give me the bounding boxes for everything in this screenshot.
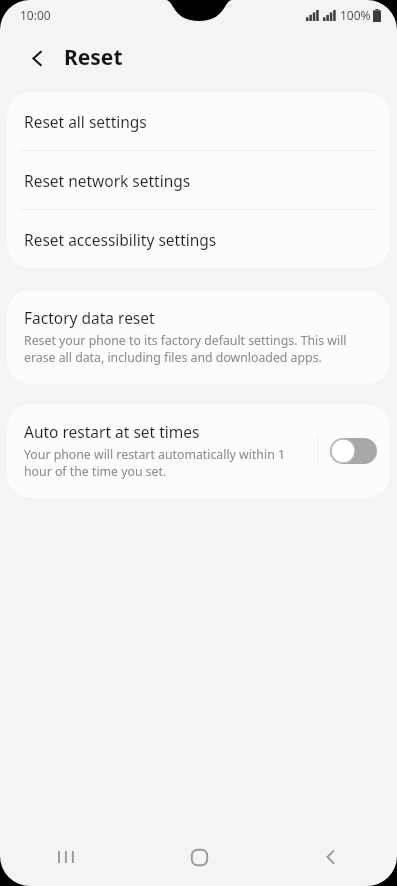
staticText: Reset — [64, 43, 123, 72]
button[interactable]: Reset network settings — [7, 151, 390, 209]
button[interactable]: Back — [265, 828, 397, 886]
button[interactable]: Auto restart at set times — [7, 404, 317, 498]
button[interactable]: Home — [133, 828, 265, 886]
staticText: Reset all settings — [24, 111, 147, 132]
staticText: Reset accessibility settings — [24, 229, 217, 250]
staticText: Auto restart at set times — [24, 421, 200, 442]
staticText: Reset network settings — [24, 170, 191, 191]
button[interactable]: Back — [20, 41, 54, 75]
staticText: Factory data reset — [24, 307, 155, 328]
button[interactable]: Auto restart toggle — [330, 438, 377, 464]
staticText: 100% — [340, 7, 371, 23]
button[interactable]: Recents — [0, 828, 133, 886]
staticText: Reset your phone to its factory default … — [24, 332, 370, 366]
button[interactable]: Factory data reset — [7, 290, 390, 384]
staticText: Your phone will restart automatically wi… — [24, 446, 311, 480]
button[interactable]: Reset accessibility settings — [7, 210, 390, 268]
staticText: 10:00 — [20, 7, 51, 23]
button[interactable]: Reset all settings — [7, 92, 390, 150]
